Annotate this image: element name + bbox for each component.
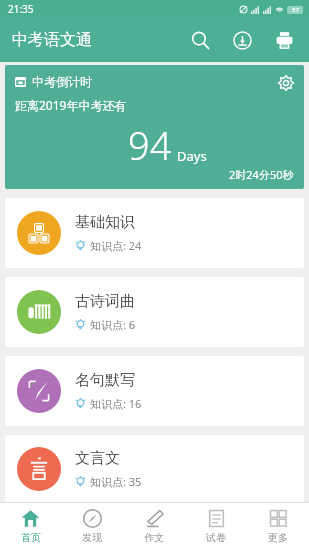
button[interactable]: 作文	[123, 502, 185, 550]
staticText: 知识点: 6	[90, 317, 136, 332]
button[interactable]: 中考倒计时	[5, 65, 304, 189]
staticText: 知识点: 16	[90, 396, 142, 411]
button[interactable]: 基础知识	[5, 198, 304, 268]
staticText: 作文	[144, 531, 164, 544]
staticText: 中考语文通	[12, 30, 92, 50]
staticText: 发现	[82, 531, 102, 544]
staticText: 首页	[21, 531, 41, 544]
staticText: 知识点: 35	[90, 474, 142, 489]
button[interactable]: Search	[179, 19, 221, 61]
button[interactable]: Settings	[268, 65, 304, 101]
button[interactable]: Print	[263, 19, 305, 61]
button[interactable]: 更多	[247, 502, 309, 550]
staticText: 名句默写	[75, 371, 135, 390]
staticText: 94	[128, 119, 172, 171]
staticText: 古诗词曲	[75, 292, 135, 311]
button[interactable]: 古诗词曲	[5, 277, 304, 347]
button[interactable]: 发现	[61, 502, 123, 550]
staticText: 距离2019年中考还有	[15, 97, 127, 113]
button[interactable]: 试卷	[185, 502, 247, 550]
staticText: 2时24分50秒	[229, 167, 294, 182]
button[interactable]: 首页	[0, 502, 61, 550]
staticText: Days	[177, 147, 207, 165]
staticText: 57	[292, 6, 299, 14]
button[interactable]: 名句默写	[5, 356, 304, 426]
staticText: 基础知识	[75, 213, 135, 232]
staticText: 试卷	[206, 531, 226, 544]
staticText: 21:35	[8, 2, 34, 16]
staticText: 更多	[268, 531, 288, 544]
staticText: 文言文	[75, 449, 120, 468]
button[interactable]: 文言文	[5, 435, 304, 502]
staticText: 知识点: 24	[90, 238, 142, 253]
staticText: 中考倒计时	[32, 74, 92, 89]
button[interactable]: Download	[221, 19, 263, 61]
